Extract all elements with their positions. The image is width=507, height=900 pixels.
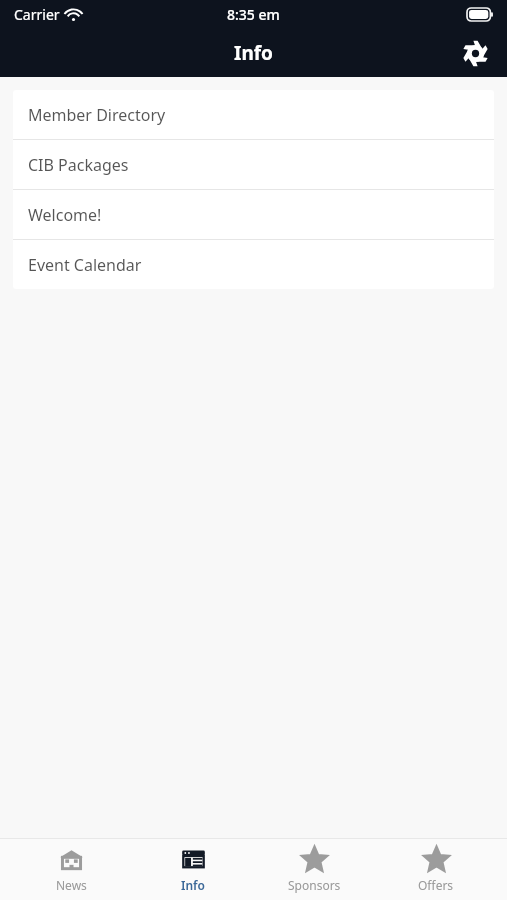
staticText: Info: [234, 40, 273, 66]
staticText: News: [56, 877, 87, 893]
staticText: Offers: [418, 877, 454, 893]
button[interactable]: News: [21, 839, 121, 900]
button[interactable]: Settings: [451, 29, 499, 77]
staticText: Welcome!: [28, 204, 102, 226]
staticText: Member Directory: [28, 104, 166, 126]
staticText: 8:35 em: [227, 5, 280, 24]
staticText: Event Calendar: [28, 254, 142, 276]
button[interactable]: Info: [143, 839, 243, 900]
staticText: Info: [181, 877, 205, 893]
staticText: CIB Packages: [28, 154, 129, 176]
button[interactable]: Welcome!: [13, 190, 494, 239]
button[interactable]: Sponsors: [264, 839, 364, 900]
staticText: Sponsors: [288, 877, 341, 893]
staticText: Carrier: [14, 5, 60, 24]
button[interactable]: Event Calendar: [13, 240, 494, 289]
button[interactable]: Member Directory: [13, 90, 494, 139]
button[interactable]: CIB Packages: [13, 140, 494, 189]
button[interactable]: Offers: [386, 839, 486, 900]
